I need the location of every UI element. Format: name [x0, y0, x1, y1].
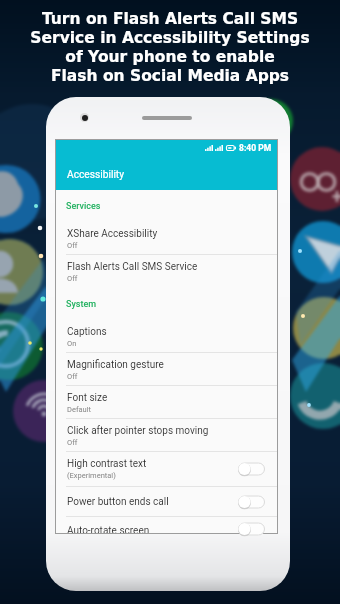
- staticText: Default: [67, 405, 91, 414]
- staticText: On: [67, 339, 77, 348]
- staticText: Captions: [67, 326, 107, 338]
- button[interactable]: Click after pointer stops moving: [56, 419, 277, 452]
- staticText: (Experimental): [67, 471, 116, 480]
- other: Toggle High contrast text: [238, 462, 265, 476]
- staticText: Off: [67, 274, 78, 283]
- staticText: Click after pointer stops moving: [67, 425, 209, 437]
- staticText: Font size: [67, 392, 108, 404]
- staticText: High contrast text: [67, 458, 147, 470]
- staticText: Off: [67, 372, 78, 381]
- other: Toggle Power button ends call: [238, 495, 265, 509]
- staticText: Power button ends call: [67, 496, 169, 508]
- staticText: Auto-rotate screen: [67, 525, 150, 533]
- staticText: System: [66, 299, 97, 310]
- other: Toggle Auto-rotate screen: [238, 525, 265, 533]
- staticText: Off: [67, 438, 78, 447]
- staticText: Flash Alerts Call SMS Service: [67, 261, 198, 273]
- button[interactable]: High contrast text: [56, 452, 277, 487]
- button[interactable]: Font size: [56, 386, 277, 419]
- staticText: Turn on Flash Alerts Call SMS Service in…: [30, 10, 310, 85]
- button[interactable]: XShare Accessibility: [56, 222, 277, 255]
- staticText: 8:40 PM: [239, 143, 272, 153]
- button[interactable]: Captions: [56, 320, 277, 353]
- staticText: XShare Accessibility: [67, 228, 158, 240]
- button[interactable]: Power button ends call: [56, 487, 277, 517]
- button[interactable]: Magnification gesture: [56, 353, 277, 386]
- button[interactable]: Auto-rotate screen: [56, 517, 277, 533]
- staticText: Magnification gesture: [67, 359, 164, 371]
- button[interactable]: Flash Alerts Call SMS Service: [56, 255, 277, 289]
- button[interactable]: Accessibility: [56, 156, 277, 190]
- staticText: Services: [66, 201, 101, 212]
- staticText: Accessibility: [67, 169, 125, 181]
- staticText: Off: [67, 241, 78, 250]
